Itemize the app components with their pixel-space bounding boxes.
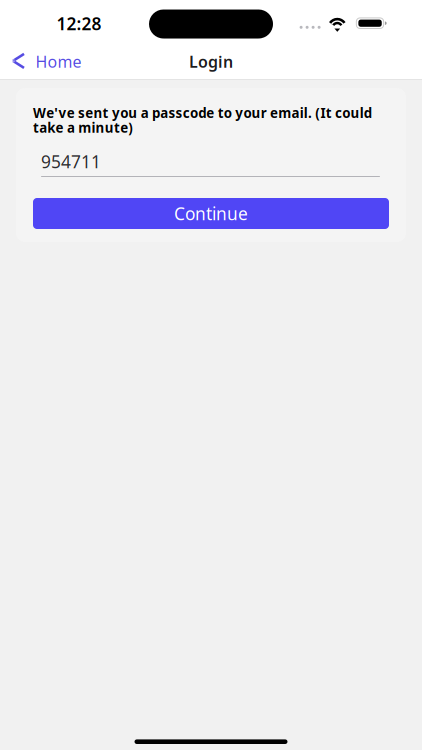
staticText: We've sent you a passcode to your email.… [33, 104, 372, 136]
staticText: Login [189, 51, 233, 72]
button[interactable]: Passcode [41, 146, 380, 177]
button[interactable]: Continue [33, 198, 389, 229]
staticText: 12:28 [56, 12, 101, 35]
staticText: 954711 [41, 150, 101, 173]
button[interactable]: Home [0, 44, 92, 79]
staticText: Continue [174, 202, 248, 225]
staticText: Home [35, 51, 81, 72]
